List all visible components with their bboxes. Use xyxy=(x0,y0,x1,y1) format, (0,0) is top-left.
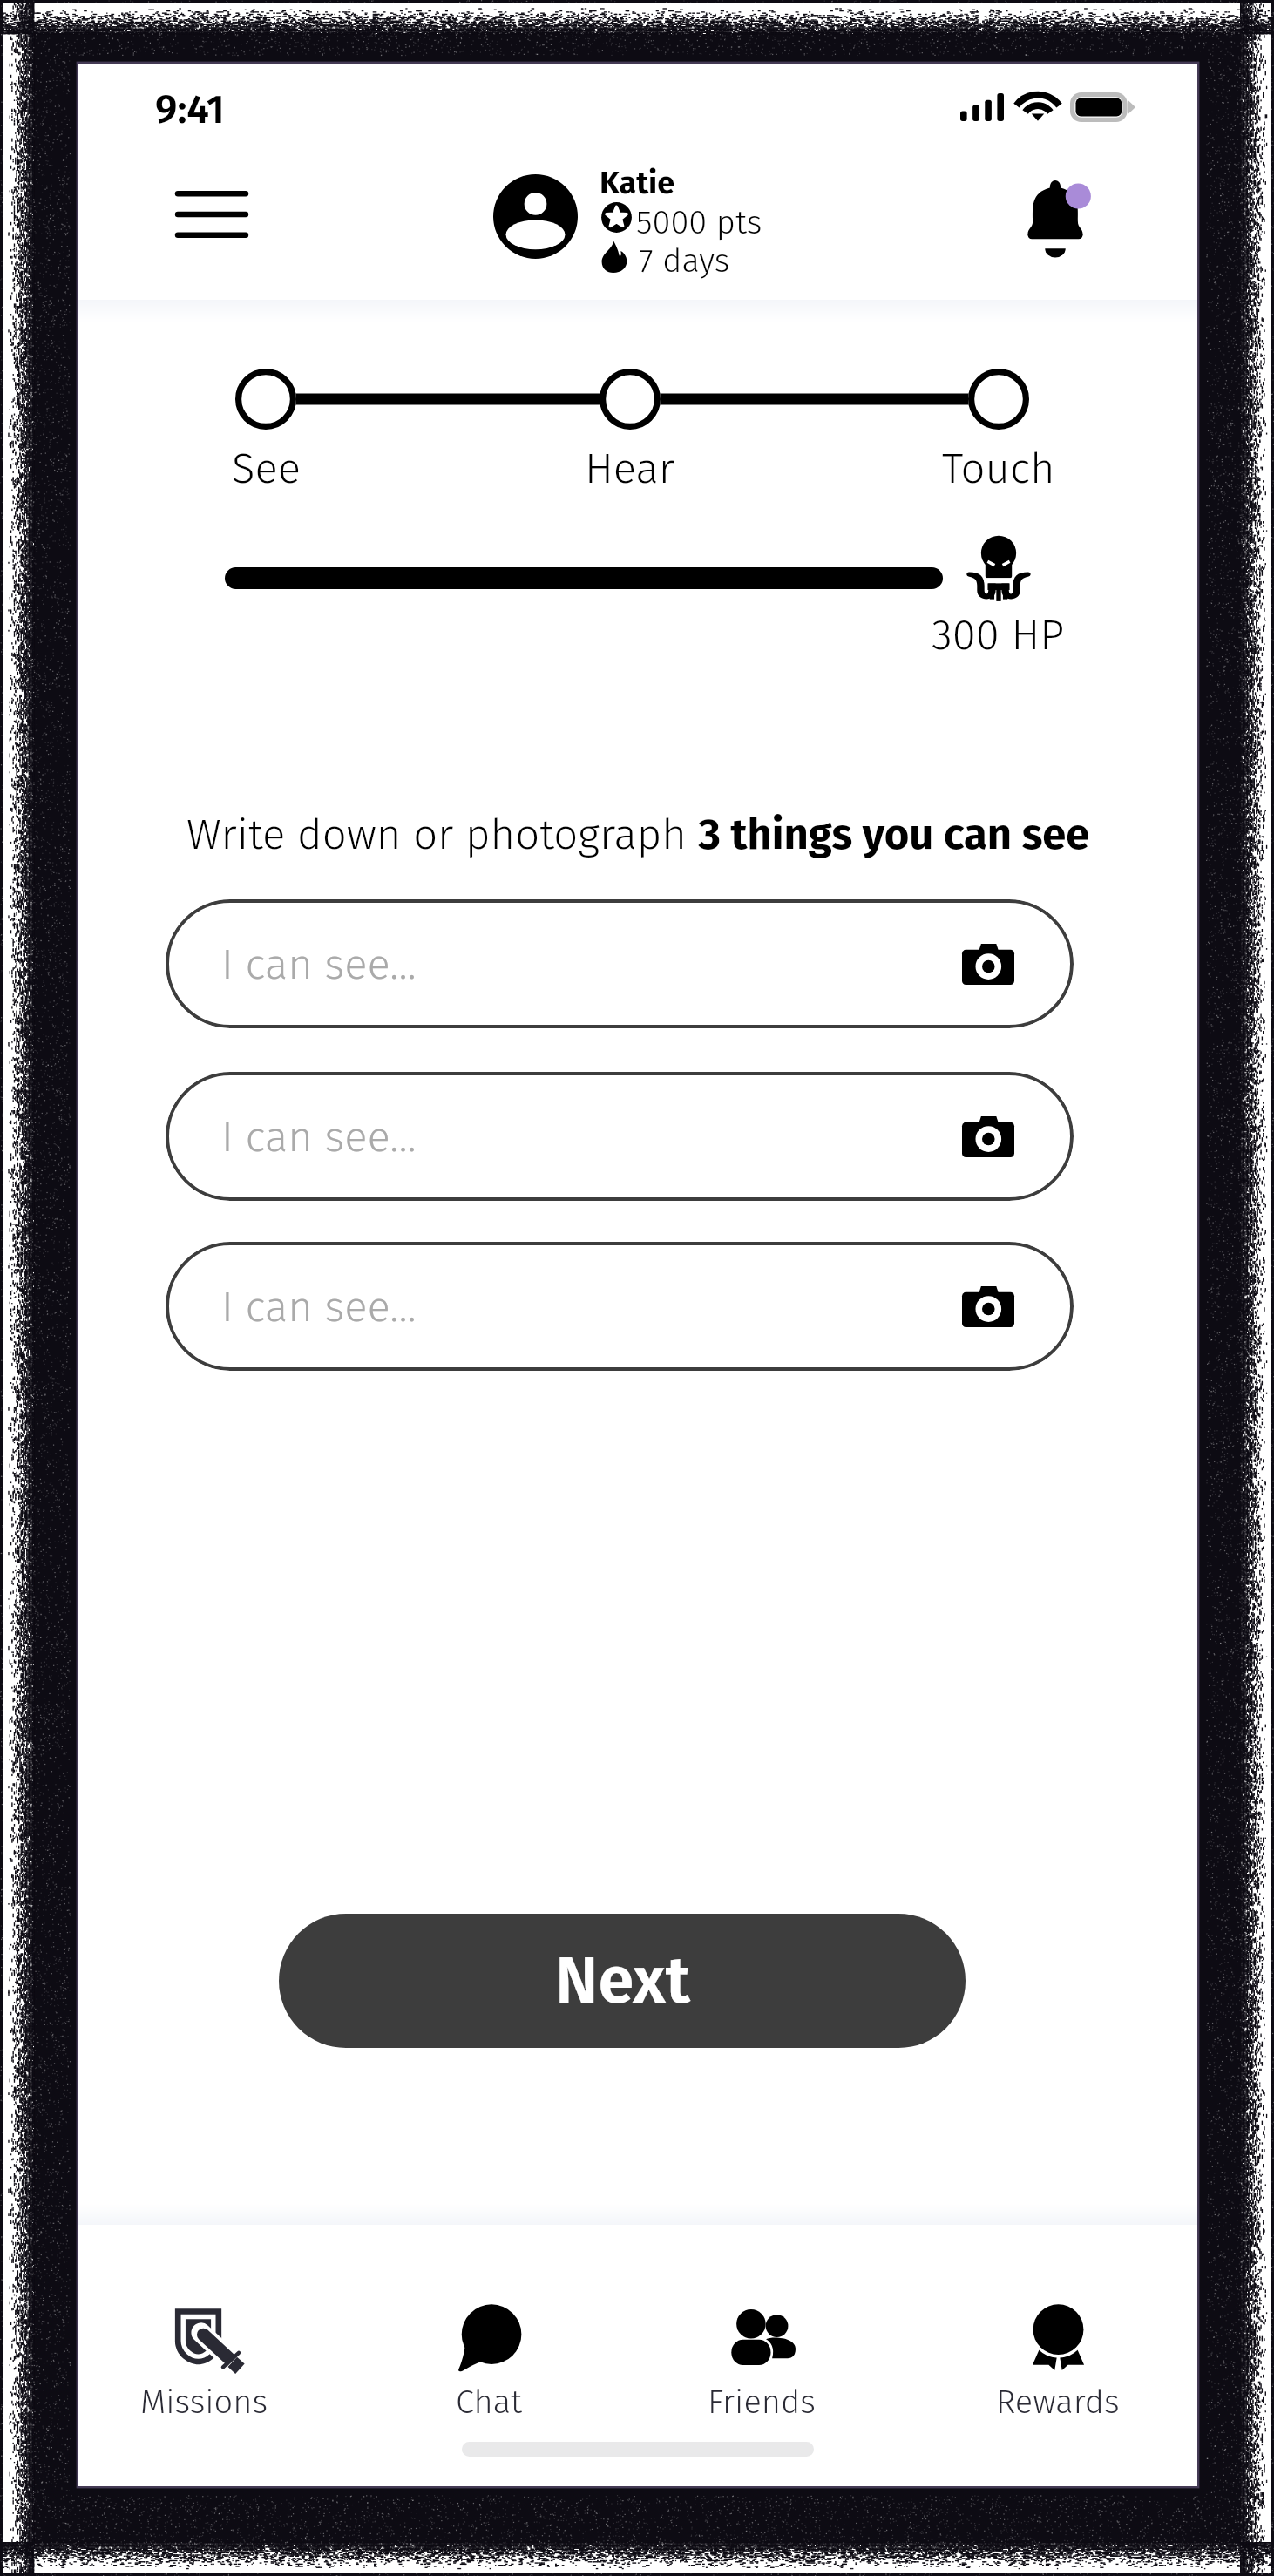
button[interactable]: See xyxy=(161,363,370,494)
button[interactable]: Take photo xyxy=(949,1097,1027,1176)
button[interactable]: Touch xyxy=(894,363,1103,494)
staticText: 5000 pts xyxy=(636,202,762,242)
button[interactable]: Take photo xyxy=(949,925,1027,1003)
staticText: I can see... xyxy=(221,1111,417,1163)
button[interactable]: Take photo xyxy=(949,1267,1027,1346)
staticText: Next xyxy=(555,1942,690,2020)
staticText: I can see... xyxy=(221,1281,417,1332)
staticText: 7 days xyxy=(639,241,730,281)
button[interactable]: Chat xyxy=(367,2291,611,2429)
staticText: 300 HP xyxy=(932,609,1065,661)
button[interactable]: I can see... xyxy=(166,899,1074,1028)
button[interactable]: Notifications xyxy=(1007,168,1103,264)
staticText: Touch xyxy=(942,443,1055,494)
staticText: Hear xyxy=(585,443,675,494)
staticText: Missions xyxy=(140,2382,268,2422)
staticText: Write down or photograph 3 things you ca… xyxy=(186,809,1090,860)
button[interactable]: Friends xyxy=(640,2291,884,2429)
staticText: See xyxy=(232,443,301,494)
button[interactable]: I can see... xyxy=(166,1242,1074,1371)
staticText: Rewards xyxy=(996,2382,1120,2422)
button[interactable]: I can see... xyxy=(166,1072,1074,1201)
button[interactable]: Hear xyxy=(525,363,735,494)
button[interactable]: Next xyxy=(279,1914,966,2048)
staticText: Friends xyxy=(708,2382,816,2422)
button[interactable]: Katie xyxy=(488,164,854,338)
staticText: Katie xyxy=(600,164,675,201)
button[interactable]: Rewards xyxy=(936,2291,1180,2429)
staticText: I can see... xyxy=(221,939,417,990)
button[interactable]: Menu xyxy=(173,175,251,254)
staticText: Chat xyxy=(456,2382,523,2422)
staticText: 9:41 xyxy=(155,85,225,133)
button[interactable]: Missions xyxy=(82,2291,326,2429)
